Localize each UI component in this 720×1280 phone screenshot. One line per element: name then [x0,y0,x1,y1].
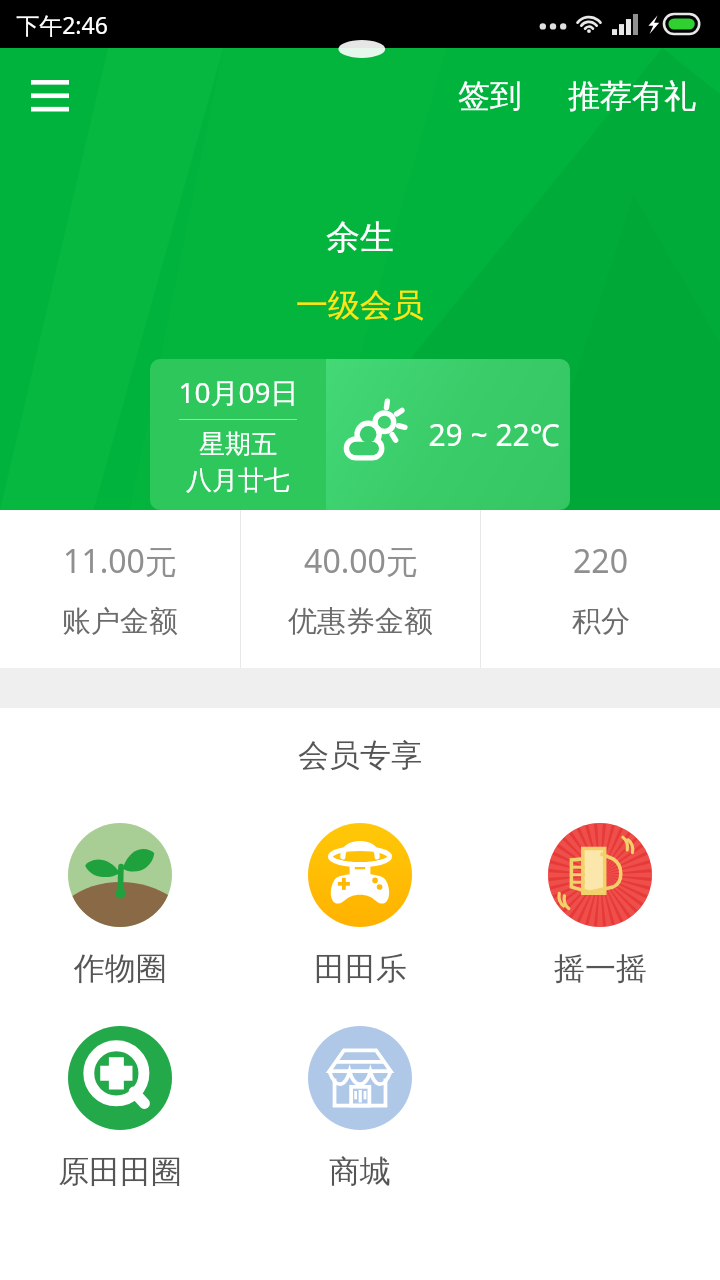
staticText: 积分 [572,603,630,640]
staticText: 220 [573,539,628,583]
staticText: 账户金额 [62,603,178,640]
button[interactable]: 10月09日 [150,359,570,510]
staticText: 11.00元 [63,539,177,583]
staticText: 10月09日 [178,373,299,411]
staticText: 八月廿七 [186,464,290,497]
staticText: 原田田圈 [58,1152,182,1191]
staticText: 余生 [326,216,394,259]
button[interactable]: 商城 [240,1026,480,1191]
staticText: 签到 [458,76,522,116]
button[interactable]: 田田乐 [240,823,480,988]
button[interactable]: Menu [18,64,82,128]
staticText: 推荐有礼 [568,76,696,116]
staticText: 商城 [329,1152,391,1191]
button[interactable]: 220 [481,510,720,668]
button[interactable]: 作物圈 [0,823,240,988]
button[interactable]: 11.00元 [0,510,240,668]
button[interactable]: 推荐有礼 [560,66,704,126]
button[interactable]: 原田田圈 [0,1026,240,1191]
button[interactable]: 摇一摇 [480,823,720,988]
button[interactable]: 40.00元 [241,510,480,668]
staticText: 会员专享 [298,736,422,775]
staticText: 29 ~ 22℃ [428,414,560,455]
button[interactable]: 签到 [446,66,534,126]
staticText: 星期五 [199,428,277,461]
staticText: 田田乐 [314,949,407,988]
staticText: 40.00元 [304,539,418,583]
staticText: 作物圈 [74,949,167,988]
staticText: 优惠券金额 [288,603,433,640]
staticText: 下午2:46 [16,9,108,40]
staticText: 一级会员 [296,285,424,325]
staticText: 摇一摇 [554,949,647,988]
